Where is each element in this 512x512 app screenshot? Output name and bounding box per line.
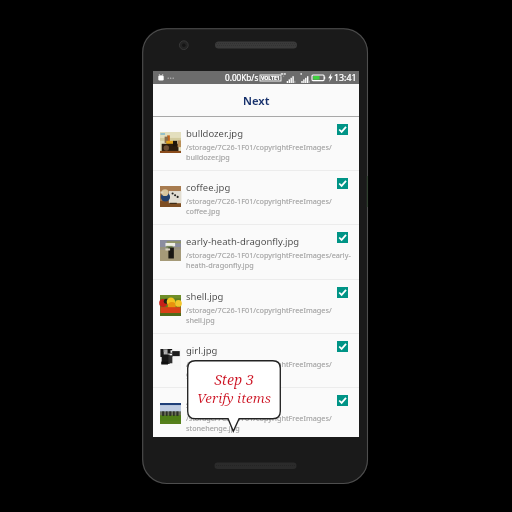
- staticText: coffee.jpg: [186, 206, 220, 216]
- staticText: shell.jpg: [186, 315, 215, 325]
- button[interactable]: Selected: [337, 232, 348, 243]
- button[interactable]: stonehenge.jpg: [153, 388, 359, 437]
- button[interactable]: coffee.jpg: [153, 171, 359, 225]
- staticText: girl.jpg: [186, 369, 211, 379]
- staticText: bulldozer.jpg: [186, 127, 244, 140]
- staticText: /storage/7C26-1F01/copyrightFreeImages/e…: [186, 250, 351, 260]
- button[interactable]: Next: [153, 84, 359, 116]
- button[interactable]: girl.jpg: [153, 334, 359, 388]
- staticText: coffee.jpg: [186, 181, 231, 194]
- staticText: 13:41: [334, 72, 357, 84]
- button[interactable]: early-heath-dragonfly.jpg: [153, 225, 359, 279]
- staticText: Next: [243, 93, 270, 108]
- button[interactable]: bulldozer.jpg: [153, 117, 359, 171]
- button[interactable]: Selected: [337, 124, 348, 135]
- button[interactable]: Selected: [337, 287, 348, 298]
- staticText: heath-dragonfly.jpg: [186, 260, 254, 270]
- staticText: Step 3: [214, 370, 254, 389]
- staticText: early-heath-dragonfly.jpg: [186, 235, 300, 248]
- staticText: stonehenge.jpg: [186, 398, 256, 411]
- staticText: /storage/7C26-1F01/copyrightFreeImages/: [186, 305, 332, 315]
- staticText: /storage/7C26-1F01/copyrightFreeImages/: [186, 359, 332, 369]
- button[interactable]: Selected: [337, 395, 348, 406]
- button[interactable]: shell.jpg: [153, 280, 359, 334]
- staticText: /storage/7C26-1F01/copyrightFreeImages/: [186, 196, 332, 206]
- button[interactable]: Selected: [337, 341, 348, 352]
- staticText: stonehenge.jpg: [186, 423, 240, 433]
- staticText: Verify items: [197, 389, 271, 407]
- button[interactable]: Selected: [337, 178, 348, 189]
- staticText: /storage/7C26-1F01/copyrightFreeImages/: [186, 413, 332, 423]
- staticText: shell.jpg: [186, 290, 224, 303]
- staticText: girl.jpg: [186, 344, 218, 357]
- staticText: 0.00Kb/s: [225, 72, 259, 83]
- staticText: /storage/7C26-1F01/copyrightFreeImages/: [186, 142, 332, 152]
- staticText: bulldozer.jpg: [186, 152, 230, 162]
- staticText: VOLTE1: [261, 75, 280, 81]
